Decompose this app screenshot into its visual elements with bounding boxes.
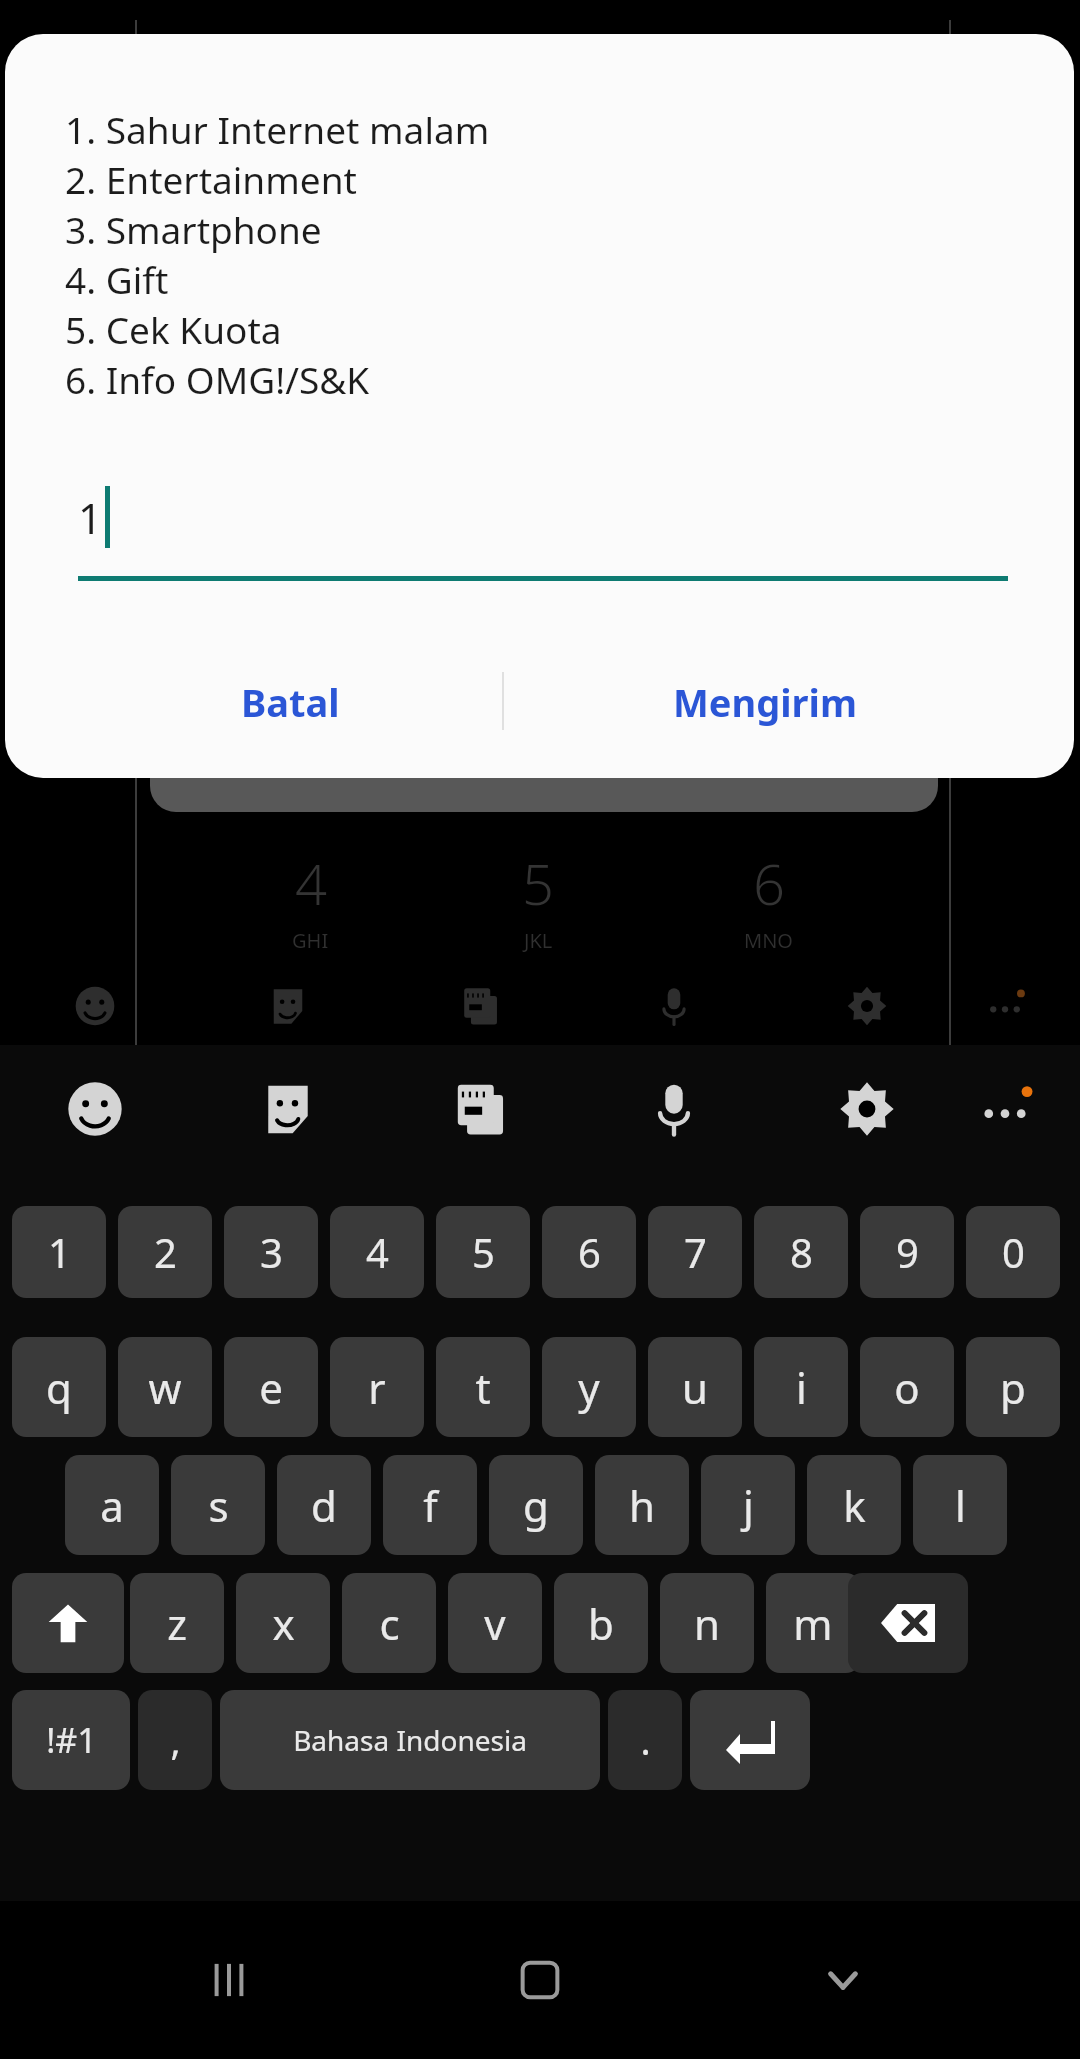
button[interactable]: Recent apps: [198, 1949, 260, 2011]
staticText: Mengirim: [673, 676, 857, 728]
staticText: 2. Entertainment: [65, 154, 357, 204]
staticText: r: [368, 1359, 386, 1416]
button[interactable]: .: [608, 1690, 682, 1790]
button[interactable]: d: [277, 1455, 371, 1555]
button[interactable]: 0: [966, 1206, 1060, 1298]
button[interactable]: w: [118, 1337, 212, 1437]
button[interactable]: k: [807, 1455, 901, 1555]
staticText: 4: [295, 845, 327, 921]
staticText: 9: [896, 1225, 919, 1279]
staticText: GHI: [292, 927, 329, 954]
staticText: m: [793, 1595, 833, 1652]
button[interactable]: !#1: [12, 1690, 130, 1790]
button[interactable]: Clipboard: [460, 985, 502, 1027]
button[interactable]: a: [65, 1455, 159, 1555]
button[interactable]: o: [860, 1337, 954, 1437]
button[interactable]: l: [913, 1455, 1007, 1555]
button[interactable]: Hide keyboard: [812, 1949, 874, 2011]
button[interactable]: Enter: [690, 1690, 810, 1790]
button[interactable]: ,: [138, 1690, 212, 1790]
button[interactable]: f: [383, 1455, 477, 1555]
button[interactable]: s: [171, 1455, 265, 1555]
staticText: u: [682, 1359, 708, 1416]
button[interactable]: Voice input: [653, 985, 695, 1027]
staticText: 2: [154, 1225, 177, 1279]
button[interactable]: 2: [118, 1206, 212, 1298]
button[interactable]: j: [701, 1455, 795, 1555]
button[interactable]: v: [448, 1573, 542, 1673]
staticText: l: [955, 1477, 966, 1534]
button[interactable]: 8: [754, 1206, 848, 1298]
staticText: 1: [48, 1225, 71, 1279]
button[interactable]: t: [436, 1337, 530, 1437]
button[interactable]: Voice input: [645, 1080, 703, 1138]
staticText: y: [578, 1359, 600, 1416]
staticText: 1. Sahur Internet malam: [65, 104, 490, 154]
button[interactable]: Mengirim: [605, 654, 925, 750]
staticText: 5. Cek Kuota: [65, 304, 282, 354]
button[interactable]: 6: [542, 1206, 636, 1298]
button[interactable]: More options: [976, 1080, 1034, 1138]
button[interactable]: 1: [78, 486, 1008, 586]
staticText: o: [894, 1359, 920, 1416]
staticText: MNO: [744, 927, 793, 954]
button[interactable]: 5: [436, 1206, 530, 1298]
staticText: a: [100, 1477, 124, 1534]
staticText: b: [588, 1595, 614, 1652]
button[interactable]: Bahasa Indonesia: [220, 1690, 600, 1790]
staticText: i: [796, 1359, 807, 1416]
button[interactable]: 3: [224, 1206, 318, 1298]
button[interactable]: y: [542, 1337, 636, 1437]
button[interactable]: b: [554, 1573, 648, 1673]
button[interactable]: c: [342, 1573, 436, 1673]
staticText: 7: [684, 1225, 707, 1279]
button[interactable]: Batal: [155, 654, 425, 750]
button[interactable]: More options: [984, 985, 1026, 1027]
staticText: p: [1000, 1359, 1026, 1416]
button[interactable]: z: [130, 1573, 224, 1673]
staticText: q: [46, 1359, 72, 1416]
staticText: n: [694, 1595, 720, 1652]
staticText: x: [272, 1595, 295, 1652]
button[interactable]: Emoji: [66, 1080, 124, 1138]
button[interactable]: n: [660, 1573, 754, 1673]
button[interactable]: i: [754, 1337, 848, 1437]
staticText: 5: [522, 845, 554, 921]
staticText: 8: [790, 1225, 813, 1279]
button[interactable]: Emoji: [74, 985, 116, 1027]
button[interactable]: Stickers: [267, 985, 309, 1027]
button[interactable]: p: [966, 1337, 1060, 1437]
staticText: c: [379, 1595, 400, 1652]
button[interactable]: Settings: [838, 1080, 896, 1138]
button[interactable]: q: [12, 1337, 106, 1437]
staticText: Batal: [241, 676, 340, 728]
staticText: z: [167, 1595, 187, 1652]
button[interactable]: m: [766, 1573, 860, 1673]
button[interactable]: 9: [860, 1206, 954, 1298]
button[interactable]: g: [489, 1455, 583, 1555]
staticText: 4. Gift: [65, 254, 169, 304]
button[interactable]: r: [330, 1337, 424, 1437]
button[interactable]: x: [236, 1573, 330, 1673]
button[interactable]: u: [648, 1337, 742, 1437]
button[interactable]: Home: [509, 1949, 571, 2011]
button[interactable]: Stickers: [259, 1080, 317, 1138]
staticText: 4: [366, 1225, 389, 1279]
button[interactable]: h: [595, 1455, 689, 1555]
button[interactable]: Shift: [12, 1573, 124, 1673]
button[interactable]: 4: [330, 1206, 424, 1298]
button[interactable]: Settings: [846, 985, 888, 1027]
staticText: 3. Smartphone: [65, 204, 322, 254]
button[interactable]: 7: [648, 1206, 742, 1298]
staticText: 3: [260, 1225, 283, 1279]
staticText: JKL: [524, 927, 553, 954]
button[interactable]: Backspace: [848, 1573, 968, 1673]
staticText: k: [843, 1477, 866, 1534]
button[interactable]: 1: [12, 1206, 106, 1298]
staticText: d: [311, 1477, 337, 1534]
staticText: v: [484, 1595, 506, 1652]
button[interactable]: e: [224, 1337, 318, 1437]
staticText: .: [640, 1714, 651, 1766]
staticText: ,: [170, 1714, 181, 1766]
button[interactable]: Clipboard: [452, 1080, 510, 1138]
